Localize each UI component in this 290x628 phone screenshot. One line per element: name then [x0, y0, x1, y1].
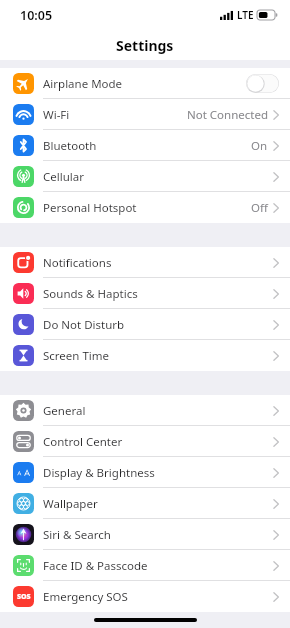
- button[interactable]: Face ID & Passcode: [0, 550, 290, 581]
- button[interactable]: SOS: [0, 581, 290, 612]
- staticText: Face ID & Passcode: [43, 558, 273, 574]
- staticText: Settings: [116, 36, 174, 55]
- staticText: Wallpaper: [43, 496, 273, 512]
- button[interactable]: Cellular: [0, 161, 290, 192]
- staticText: Display & Brightness: [43, 465, 273, 481]
- staticText: Off: [251, 200, 268, 216]
- button[interactable]: Siri & Search: [0, 519, 290, 550]
- button[interactable]: Airplane Mode: [0, 68, 290, 99]
- staticText: 10:05: [20, 7, 53, 24]
- button[interactable]: General: [0, 395, 290, 426]
- button[interactable]: Wallpaper: [0, 488, 290, 519]
- staticText: Sounds & Haptics: [43, 286, 273, 302]
- button[interactable]: Sounds & Haptics: [0, 278, 290, 309]
- staticText: General: [43, 403, 273, 419]
- staticText: Not Connected: [187, 107, 268, 123]
- staticText: Control Center: [43, 434, 273, 450]
- button[interactable]: Do Not Disturb: [0, 309, 290, 340]
- button[interactable]: Display & Brightness: [0, 457, 290, 488]
- button[interactable]: Control Center: [0, 426, 290, 457]
- staticText: Cellular: [43, 169, 273, 185]
- staticText: Bluetooth: [43, 138, 251, 154]
- staticText: Airplane Mode: [43, 76, 246, 92]
- staticText: Wi-Fi: [43, 107, 187, 123]
- staticText: LTE: [237, 8, 254, 22]
- button[interactable]: Notifications: [0, 247, 290, 278]
- staticText: Notifications: [43, 255, 273, 271]
- staticText: On: [251, 138, 268, 154]
- button[interactable]: Screen Time: [0, 340, 290, 371]
- staticText: Personal Hotspot: [43, 200, 251, 216]
- button[interactable]: Personal Hotspot: [0, 192, 290, 223]
- button[interactable]: Airplane Mode toggle, off: [246, 74, 279, 93]
- staticText: Do Not Disturb: [43, 317, 273, 333]
- staticText: Emergency SOS: [43, 589, 273, 605]
- staticText: SOS: [17, 592, 31, 602]
- button[interactable]: Bluetooth: [0, 130, 290, 161]
- button[interactable]: Wi-Fi: [0, 99, 290, 130]
- staticText: Siri & Search: [43, 527, 273, 543]
- staticText: Screen Time: [43, 348, 273, 364]
